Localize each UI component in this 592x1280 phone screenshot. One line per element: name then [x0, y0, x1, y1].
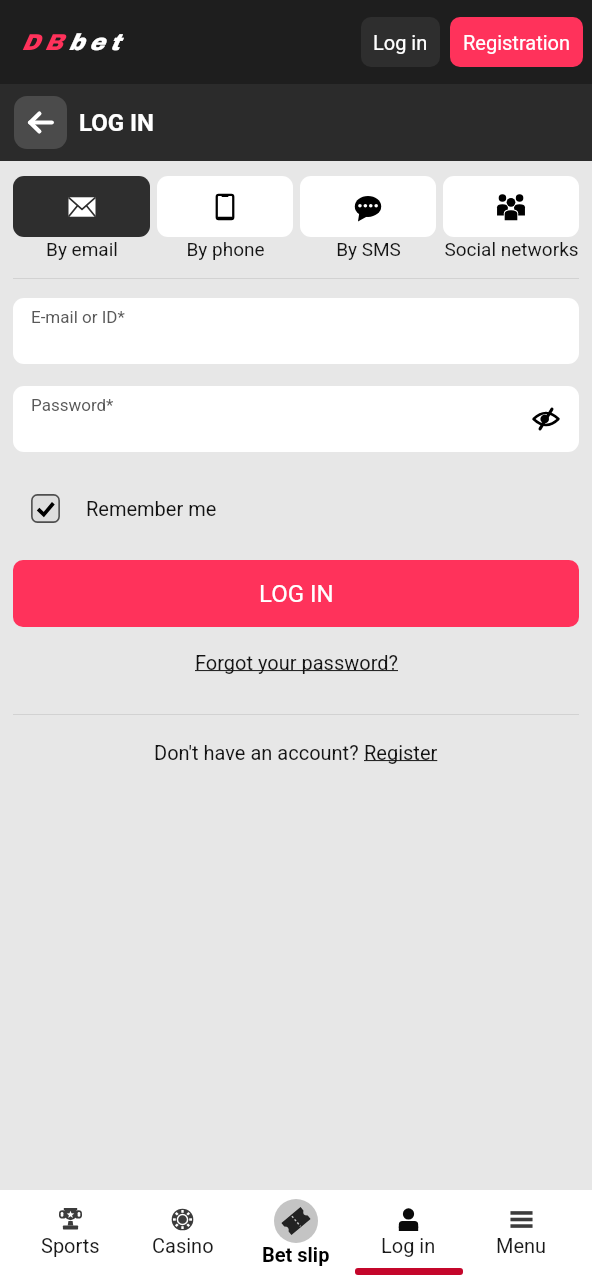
staticText: Log in [381, 1234, 436, 1257]
button[interactable]: LOG IN [13, 560, 579, 627]
staticText: Don't have an account? [154, 741, 364, 764]
staticText: LOG IN [259, 580, 334, 608]
staticText: Remember me [86, 497, 217, 520]
button[interactable]: Register [364, 741, 438, 764]
staticText: Social networks [444, 238, 579, 260]
button[interactable]: E-mail or ID* [13, 298, 579, 364]
staticText: Sports [41, 1234, 100, 1257]
button[interactable]: Menu [465, 1190, 578, 1280]
staticText: Menu [496, 1234, 547, 1257]
button[interactable]: Forgot your password? [195, 651, 398, 674]
button[interactable]: DBbet home [21, 30, 125, 55]
button[interactable]: Social networks [443, 176, 579, 260]
button[interactable]: Sports [14, 1190, 126, 1280]
button[interactable]: Show password [526, 399, 566, 439]
button[interactable]: By SMS [300, 176, 436, 260]
staticText: By phone [186, 238, 265, 260]
staticText: Registration [463, 31, 571, 54]
staticText: Casino [152, 1234, 214, 1257]
button[interactable]: Log in [352, 1190, 465, 1280]
button[interactable]: Back [14, 96, 67, 149]
staticText: bet [68, 30, 125, 55]
staticText: DB [21, 30, 68, 55]
staticText: By SMS [336, 238, 401, 260]
button[interactable]: By phone [157, 176, 293, 260]
button[interactable]: Bet slip [239, 1190, 352, 1280]
staticText: E-mail or ID* [31, 307, 125, 327]
staticText: Bet slip [262, 1243, 330, 1266]
staticText: Password* [31, 395, 114, 415]
button[interactable]: Password* [13, 386, 579, 452]
staticText: By email [46, 238, 118, 260]
button[interactable]: Remember me [31, 494, 217, 523]
button[interactable]: Casino [126, 1190, 239, 1280]
button[interactable]: Log in [361, 17, 440, 67]
staticText: LOG IN [79, 109, 155, 137]
staticText: Log in [373, 31, 428, 54]
button[interactable]: Registration [450, 17, 583, 67]
button[interactable]: By email [13, 176, 150, 260]
